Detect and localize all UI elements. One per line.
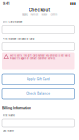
staticText: Shipping Payment Review Confirm: [21, 13, 57, 16]
staticText: Checkout: [28, 7, 50, 13]
staticText: We're sorry, the gift card number you en…: [10, 54, 71, 60]
staticText: 9:41: [3, 2, 9, 5]
staticText: Gift Card Number: [3, 20, 23, 23]
button[interactable]: Check Balance: [0, 88, 79, 99]
staticText: ▮▮▮: [70, 2, 76, 5]
staticText: Apply Gift Card: [27, 77, 50, 81]
button[interactable]: Apply Gift Card: [0, 74, 79, 84]
staticText: PIN Number (on back of card): [3, 37, 35, 40]
staticText: Last Name: [3, 129, 14, 132]
staticText: Billing Information: [2, 106, 31, 110]
staticText: Check Balance: [26, 92, 50, 95]
staticText: First Name: [3, 114, 15, 117]
